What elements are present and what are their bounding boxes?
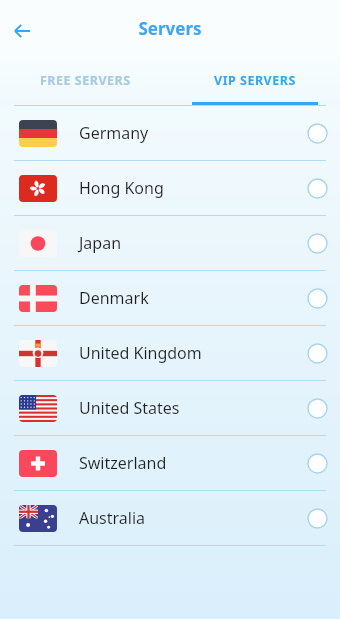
- button[interactable]: Select Germany: [300, 116, 334, 150]
- staticText: Germany: [79, 122, 149, 144]
- button[interactable]: Japan: [0, 216, 340, 270]
- staticText: Switzerland: [79, 452, 167, 474]
- staticText: Japan: [79, 232, 122, 254]
- button[interactable]: Switzerland: [0, 436, 340, 490]
- staticText: United Kingdom: [79, 342, 202, 364]
- button[interactable]: FREE SERVERS: [0, 55, 170, 105]
- staticText: Hong Kong: [79, 177, 164, 199]
- staticText: FREE SERVERS: [40, 72, 131, 89]
- button[interactable]: Australia: [0, 491, 340, 545]
- button[interactable]: Back: [8, 13, 44, 49]
- button[interactable]: Select Japan: [300, 226, 334, 260]
- staticText: Servers: [0, 17, 340, 40]
- button[interactable]: Denmark: [0, 271, 340, 325]
- button[interactable]: Select Denmark: [300, 281, 334, 315]
- button[interactable]: Germany: [0, 106, 340, 160]
- button[interactable]: Select Australia: [300, 501, 334, 535]
- staticText: Australia: [79, 507, 146, 529]
- button[interactable]: Select United States: [300, 391, 334, 425]
- button[interactable]: Select Switzerland: [300, 446, 334, 480]
- button[interactable]: VIP SERVERS: [170, 55, 340, 105]
- button[interactable]: Select Hong Kong: [300, 171, 334, 205]
- staticText: United States: [79, 397, 180, 419]
- button[interactable]: United Kingdom: [0, 326, 340, 380]
- staticText: VIP SERVERS: [214, 72, 296, 89]
- button[interactable]: United States: [0, 381, 340, 435]
- button[interactable]: Select United Kingdom: [300, 336, 334, 370]
- staticText: Denmark: [79, 287, 149, 309]
- button[interactable]: Hong Kong: [0, 161, 340, 215]
